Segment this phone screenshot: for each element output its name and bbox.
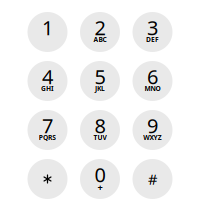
staticText: 0 [94, 161, 105, 188]
staticText: GHI [41, 84, 54, 93]
button[interactable]: Pound [132, 159, 172, 199]
button[interactable]: 7 [27, 110, 67, 150]
button[interactable]: 8 [80, 110, 120, 150]
button[interactable]: 0 [80, 159, 120, 199]
staticText: 8 [94, 112, 105, 139]
button[interactable]: 9 [132, 110, 172, 150]
button[interactable]: 6 [132, 61, 172, 101]
staticText: 6 [147, 63, 158, 90]
staticText: PQRS [39, 133, 56, 142]
button[interactable]: 3 [132, 12, 172, 52]
button[interactable]: 2 [80, 12, 120, 52]
button[interactable]: 4 [27, 61, 67, 101]
staticText: 7 [42, 112, 53, 139]
staticText: 3 [147, 14, 158, 41]
button[interactable]: Star [27, 159, 67, 199]
staticText: 9 [147, 112, 158, 139]
button[interactable]: 1 [27, 12, 67, 52]
staticText: MNO [144, 84, 161, 93]
staticText: JKL [95, 84, 105, 93]
staticText: 1 [42, 14, 53, 41]
staticText: # [148, 169, 157, 189]
staticText: 2 [94, 14, 105, 41]
staticText: ABC [93, 35, 107, 44]
staticText: WXYZ [143, 133, 162, 142]
staticText: 4 [42, 63, 53, 90]
staticText: + [97, 181, 102, 194]
staticText: 5 [94, 63, 105, 90]
staticText: DEF [146, 35, 159, 44]
staticText: TUV [93, 133, 107, 142]
button[interactable]: 5 [80, 61, 120, 101]
